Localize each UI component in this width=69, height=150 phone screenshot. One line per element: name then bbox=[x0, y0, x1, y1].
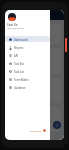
staticText: Cash On bbox=[7, 23, 18, 27]
button[interactable]: Form Maker bbox=[5, 75, 50, 83]
staticText: API bbox=[14, 54, 19, 57]
button[interactable]: API bbox=[5, 51, 50, 59]
button[interactable]: Guidance bbox=[5, 83, 50, 91]
button[interactable]: Add bbox=[53, 121, 61, 129]
button[interactable]: Reports bbox=[5, 43, 50, 51]
staticText: Form Maker bbox=[14, 78, 29, 81]
staticText: Task List bbox=[14, 70, 25, 73]
button[interactable]: Tool Box bbox=[5, 59, 50, 67]
button[interactable]: Task List bbox=[5, 67, 50, 75]
staticText: Reports bbox=[14, 46, 24, 49]
button[interactable]: Dashboard bbox=[5, 35, 50, 43]
staticText: Tool Box bbox=[14, 62, 25, 65]
staticText: Made with bbox=[30, 129, 42, 132]
staticText: Guidance bbox=[14, 86, 26, 89]
staticText: cashon@gmail.com bbox=[7, 27, 25, 30]
staticText: Dashboard bbox=[14, 38, 28, 41]
